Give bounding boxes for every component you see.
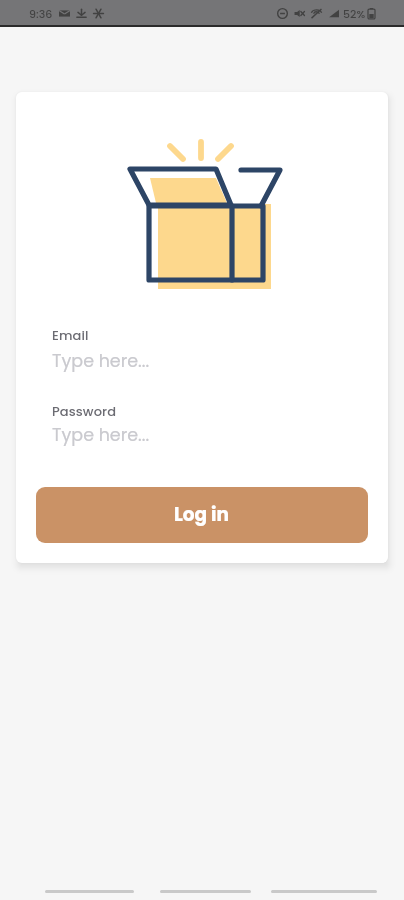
staticText: Type here... [52,423,150,448]
button[interactable]: Email [52,320,352,377]
button[interactable]: Password [52,396,352,453]
button[interactable]: Back [271,862,377,900]
button[interactable]: Home [160,862,251,900]
staticText: 52% [343,6,366,21]
staticText: Type here... [52,349,150,374]
staticText: Password [52,402,117,420]
button[interactable]: Log in [36,487,368,543]
staticText: 9:36 [29,6,53,21]
staticText: Log in [174,502,230,528]
staticText: Email [52,326,89,344]
button[interactable]: Recents [45,862,134,900]
